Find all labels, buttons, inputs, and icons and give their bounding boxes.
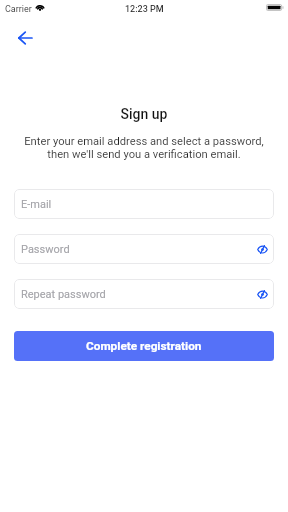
button[interactable]: Complete registration: [14, 331, 274, 361]
button[interactable]: Password: [14, 234, 274, 264]
staticText: Password: [21, 243, 70, 256]
staticText: Enter your email address and select a pa…: [0, 135, 288, 161]
button[interactable]: E-mail: [14, 189, 274, 219]
staticText: Repeat password: [21, 288, 106, 301]
button[interactable]: Back: [10, 23, 39, 52]
staticText: 12:23 PM: [125, 4, 164, 15]
staticText: Carrier: [5, 4, 32, 15]
staticText: E-mail: [21, 198, 52, 211]
staticText: Complete registration: [86, 339, 202, 353]
button[interactable]: Repeat password: [14, 279, 274, 309]
button[interactable]: Show password: [255, 287, 269, 301]
button[interactable]: Show password: [255, 242, 269, 256]
staticText: Sign up: [0, 106, 288, 122]
